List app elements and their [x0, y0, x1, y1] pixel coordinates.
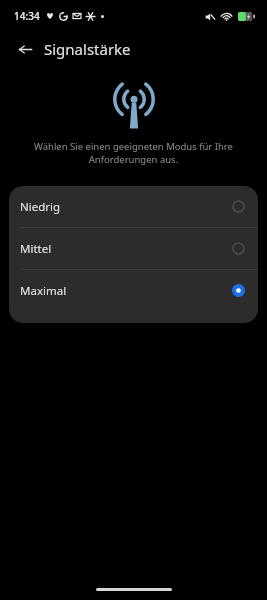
staticText: Mittel: [20, 241, 52, 257]
staticText: Wählen Sie einen geeigneten Modus für Ih…: [8, 140, 259, 166]
staticText: Niedrig: [20, 199, 61, 215]
button[interactable]: Maximal: [9, 270, 258, 311]
staticText: Signalstärke: [44, 39, 131, 59]
button[interactable]: Niedrig: [9, 186, 258, 227]
button[interactable]: Back: [10, 34, 40, 64]
button[interactable]: Mittel: [9, 228, 258, 269]
staticText: 14:34: [14, 9, 40, 23]
staticText: Maximal: [20, 283, 67, 299]
